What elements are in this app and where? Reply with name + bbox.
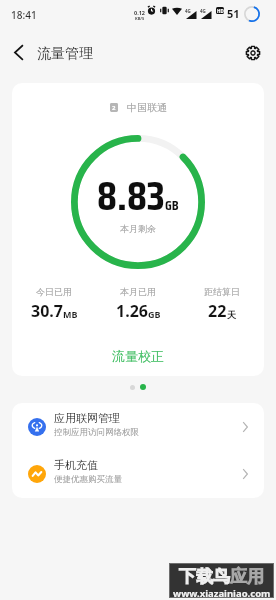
button[interactable]: 流量校正 bbox=[100, 345, 176, 367]
staticText: 本月剩余 bbox=[12, 223, 264, 234]
staticText: GB bbox=[165, 194, 179, 216]
staticText: 2 bbox=[112, 104, 116, 112]
button[interactable]: Back bbox=[4, 38, 32, 66]
staticText: 便捷优惠购买流量 bbox=[54, 474, 122, 485]
staticText: 30.7 bbox=[31, 300, 63, 322]
staticText: 51 bbox=[227, 6, 240, 21]
staticText: 4G bbox=[185, 8, 191, 14]
staticText: 流量管理 bbox=[37, 45, 93, 63]
staticText: 0.12 bbox=[134, 9, 145, 16]
staticText: 距结算日 bbox=[204, 286, 240, 297]
staticText: HD bbox=[217, 8, 224, 14]
staticText: 18:41 bbox=[11, 8, 37, 22]
staticText: 22 bbox=[208, 300, 227, 322]
staticText: 今日已用 bbox=[36, 286, 72, 297]
button[interactable]: 手机充值 bbox=[12, 450, 264, 497]
staticText: 4G bbox=[200, 8, 206, 14]
staticText: 下载鸟 bbox=[179, 566, 230, 587]
staticText: KB/S bbox=[135, 16, 145, 21]
button[interactable]: Settings bbox=[240, 40, 265, 65]
staticText: 8.83 bbox=[97, 163, 165, 228]
staticText: 应用 bbox=[230, 566, 264, 587]
staticText: 手机充值 bbox=[54, 458, 98, 472]
staticText: 1.26 bbox=[116, 300, 148, 322]
staticText: www.xiazainiao.com bbox=[173, 587, 271, 598]
staticText: 控制应用访问网络权限 bbox=[54, 427, 139, 438]
staticText: 天 bbox=[227, 309, 236, 320]
staticText: 中国联通 bbox=[127, 101, 167, 114]
button[interactable]: 应用联网管理 bbox=[12, 403, 264, 450]
staticText: GB bbox=[148, 308, 161, 320]
staticText: 流量校正 bbox=[112, 348, 164, 364]
staticText: MB bbox=[63, 308, 78, 320]
staticText: 本月已用 bbox=[120, 286, 156, 297]
staticText: 应用联网管理 bbox=[54, 411, 120, 425]
